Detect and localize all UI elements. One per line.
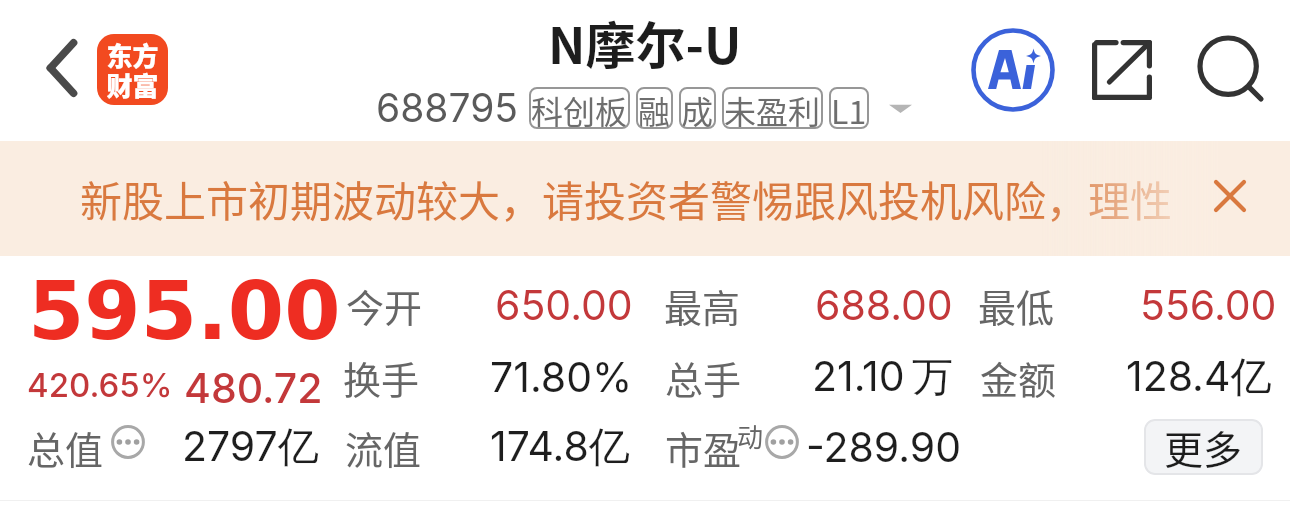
- staticText: 流值: [345, 420, 422, 475]
- staticText: 21.10 万: [812, 351, 953, 403]
- staticText: N摩尔-U: [548, 6, 742, 78]
- staticText: 71.80%: [490, 352, 633, 402]
- staticText: 420.65%: [27, 365, 173, 405]
- button[interactable]: AI assistant: [970, 27, 1056, 113]
- button[interactable]: Back: [20, 26, 104, 110]
- staticText: 新股上市初期波动较大，请投资者警惕跟风投机风险，理性: [80, 168, 1173, 229]
- staticText: 总手: [665, 350, 742, 405]
- button[interactable]: 更多: [1144, 419, 1263, 475]
- staticText: 688.00: [815, 280, 953, 330]
- staticText: 650.00: [495, 280, 633, 330]
- staticText: 换手: [343, 350, 420, 405]
- staticText: L1: [831, 87, 867, 129]
- staticText: -289.90: [806, 422, 962, 472]
- staticText: 东方 财富: [106, 36, 159, 104]
- button[interactable]: Show more: [882, 90, 918, 126]
- staticText: 市盈: [665, 420, 742, 475]
- staticText: 480.72: [184, 363, 323, 413]
- staticText: 今开: [346, 278, 423, 333]
- staticText: 595.00: [28, 264, 341, 358]
- staticText: 融: [638, 87, 671, 129]
- staticText: 2797亿: [182, 421, 319, 473]
- staticText: 556.00: [1140, 280, 1277, 330]
- staticText: 688795: [376, 84, 519, 131]
- staticText: 最低: [978, 278, 1055, 333]
- staticText: 最高: [664, 278, 741, 333]
- staticText: 成: [681, 87, 714, 129]
- button[interactable]: Share: [1080, 28, 1164, 112]
- button[interactable]: Close notice: [1186, 141, 1274, 251]
- staticText: 未盈利: [724, 87, 821, 129]
- button[interactable]: Search: [1190, 28, 1274, 112]
- staticText: 174.8亿: [490, 421, 630, 473]
- staticText: 动: [737, 417, 764, 455]
- button[interactable]: East Money logo: [97, 34, 168, 105]
- staticText: 128.4亿: [1126, 351, 1272, 403]
- staticText: 总值: [27, 420, 104, 475]
- staticText: 更多: [1164, 419, 1243, 475]
- staticText: 科创板: [531, 87, 628, 129]
- staticText: 金额: [980, 350, 1057, 405]
